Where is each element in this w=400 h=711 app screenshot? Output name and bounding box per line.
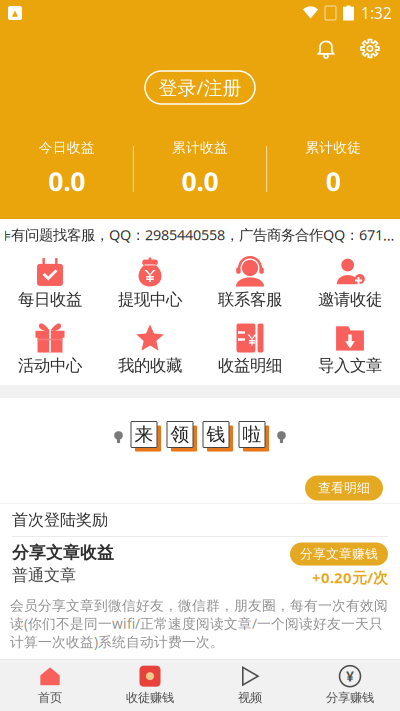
staticText: 分享赚钱 <box>326 690 374 705</box>
button[interactable]: 邀请收徒 <box>300 254 400 314</box>
staticText: 首页 <box>38 690 62 705</box>
button[interactable]: 登录/注册 <box>145 71 255 104</box>
staticText: 视频 <box>238 690 262 705</box>
button[interactable]: 设置 <box>348 26 392 71</box>
button[interactable]: 收徒赚钱 <box>100 660 200 711</box>
staticText: 累计收益 <box>172 139 228 156</box>
staticText: 0 <box>326 163 341 199</box>
button[interactable]: 收益明细 <box>200 320 300 380</box>
button[interactable]: 查看明细 <box>305 475 383 500</box>
button[interactable]: 提现中心 <box>100 254 200 314</box>
staticText: 来 <box>134 423 153 446</box>
staticText: 钱 <box>206 423 225 446</box>
staticText: 活动中心 <box>18 355 82 376</box>
button[interactable]: 每日收益 <box>0 254 100 314</box>
staticText: ¥ <box>346 667 354 685</box>
button[interactable]: 通知 <box>304 26 348 71</box>
staticText: 分享文章收益 <box>12 542 114 563</box>
staticText: 普通文章 <box>12 565 76 585</box>
button[interactable]: 分享文章赚钱 <box>290 542 388 565</box>
staticText: 收徒赚钱 <box>126 690 174 705</box>
staticText: 0.0 <box>48 163 85 199</box>
staticText: 今日收益 <box>39 139 95 156</box>
staticText: 提现中心 <box>118 289 182 310</box>
button[interactable]: 导入文章 <box>300 320 400 380</box>
button[interactable]: 视频 <box>200 660 300 711</box>
staticText: 每日收益 <box>18 289 82 310</box>
staticText: 导入文章 <box>318 355 382 376</box>
button[interactable]: 我的收藏 <box>100 320 200 380</box>
staticText: 邀请收徒 <box>318 289 382 310</box>
staticText: 累计收徒 <box>305 139 361 156</box>
button[interactable]: 活动中心 <box>0 320 100 380</box>
staticText: 我的收藏 <box>118 355 182 376</box>
staticText: 领 <box>170 423 189 446</box>
staticText: 啦 <box>242 423 261 446</box>
button[interactable]: ¥ <box>300 660 400 711</box>
staticText: 查看明细 <box>318 480 370 496</box>
staticText: 首次登陆奖励 <box>12 510 108 530</box>
staticText: 收益明细 <box>218 355 282 376</box>
staticText: 0.0 <box>181 163 218 199</box>
staticText: ▲ <box>12 8 18 17</box>
staticText: 分享文章赚钱 <box>300 546 378 562</box>
button[interactable]: 首页 <box>0 660 100 711</box>
staticText: ⊧有问题找客服，QQ：2985440558，广告商务合作QQ：6710364 <box>4 225 396 245</box>
staticText: 1:32 <box>361 3 392 23</box>
staticText: +0.20元/次 <box>312 567 388 587</box>
staticText: 联系客服 <box>218 289 282 310</box>
staticText: 登录/注册 <box>158 75 241 100</box>
button[interactable]: 联系客服 <box>200 254 300 314</box>
staticText: 会员分享文章到微信好友，微信群，朋友圈，每有一次有效阅读(你们不是同一wifi/… <box>10 597 388 651</box>
